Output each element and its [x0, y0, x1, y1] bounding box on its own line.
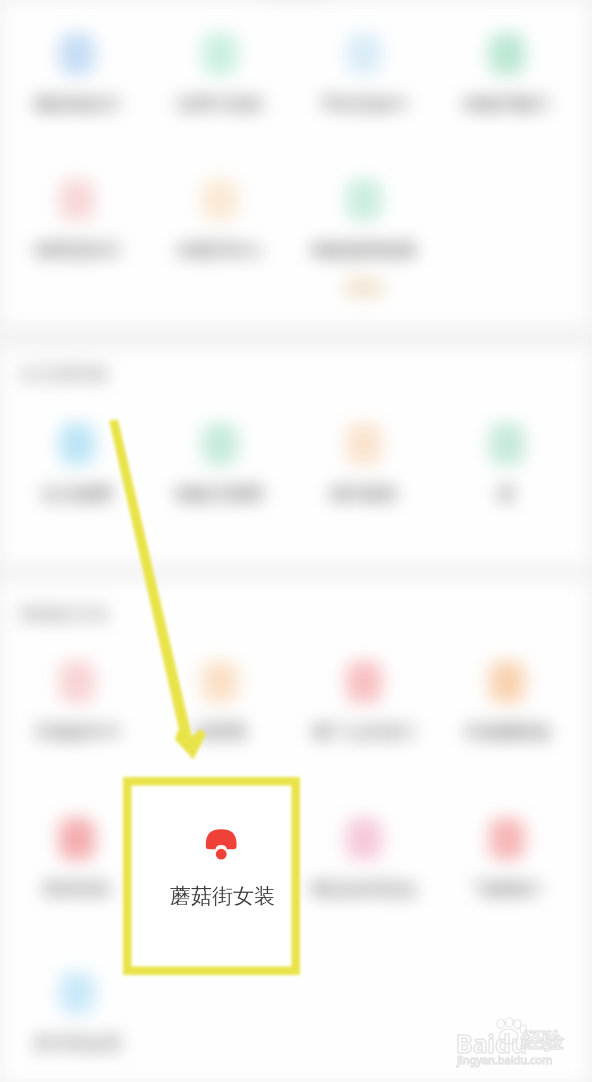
staticText: 生活缴费 [42, 483, 112, 505]
staticText: 淘票票 [194, 721, 247, 743]
button[interactable]: 淘宝特价 [6, 877, 148, 901]
staticText: Baidu [456, 1026, 528, 1060]
staticText: 生活便民服 [20, 363, 108, 385]
staticText: 蘑菇街女装 [170, 883, 275, 909]
staticText: 蚂蚁庄园喂 [176, 483, 264, 505]
button[interactable]: 飞猪旅行 [436, 877, 578, 901]
staticText: 饿了么外卖订 [312, 721, 417, 743]
staticText: 余额宝转入 [176, 239, 264, 261]
staticText: 城市服务 [329, 483, 399, 505]
button[interactable]: 余额宝转入 [149, 238, 291, 262]
staticText: 信用卡还款 [176, 93, 264, 115]
staticText: 经验 [521, 1028, 563, 1054]
staticText: 支付宝会员 [33, 1032, 121, 1054]
staticText: 手机充值卡 [320, 93, 408, 115]
button[interactable]: 天猫超市卡 [6, 720, 148, 744]
button[interactable]: 饿了么外卖订 [293, 720, 435, 744]
button[interactable]: 淘票票 [149, 720, 291, 744]
staticText: 飞猪旅行 [472, 878, 542, 900]
button[interactable]: 蚂蚁森林能量 [293, 238, 435, 262]
button[interactable]: 蚂蚁庄园喂 [149, 482, 291, 506]
button[interactable]: 医 [436, 482, 578, 506]
button[interactable]: 手机充值卡 [293, 92, 435, 116]
button[interactable]: 城市服务 [293, 482, 435, 506]
staticText: 唯品会特卖会 [312, 878, 417, 900]
staticText: 医 [498, 483, 516, 505]
staticText: 花呗还款日 [33, 239, 121, 261]
button[interactable]: 唯品会特卖会 [293, 877, 435, 901]
staticText: 我的钱包卡 [33, 93, 121, 115]
button[interactable]: 生活缴费 [6, 482, 148, 506]
staticText: 转账到银行 [463, 93, 551, 115]
button[interactable]: 花呗还款日 [6, 238, 148, 262]
staticText: 购物娱乐场 [20, 603, 108, 625]
button[interactable]: 蘑菇街女装 [123, 777, 300, 975]
button[interactable]: 支付宝会员 [6, 1031, 148, 1055]
button[interactable]: 转账到银行 [436, 92, 578, 116]
staticText: 蚂蚁森林能量 [312, 239, 417, 261]
button[interactable]: 信用卡还款 [149, 92, 291, 116]
button[interactable]: 我的钱包卡 [6, 92, 148, 116]
button[interactable]: 天猫国际版 [436, 720, 578, 744]
staticText: jingyan.baidu.com [457, 1052, 553, 1067]
staticText: 天猫国际版 [463, 721, 551, 743]
staticText: 淘宝特价 [42, 878, 112, 900]
staticText: 天猫超市卡 [33, 721, 121, 743]
